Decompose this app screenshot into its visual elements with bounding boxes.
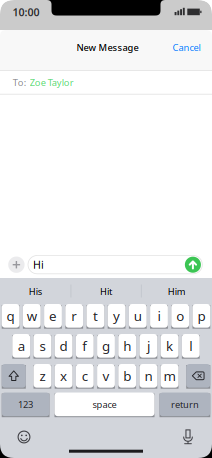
button[interactable]: c [76,364,94,388]
button[interactable]: d [55,334,72,358]
button[interactable]: j [139,334,157,358]
button[interactable] [8,256,25,273]
staticText: u [134,307,142,325]
button[interactable]: r [65,304,83,328]
staticText: a [18,337,25,355]
staticText: l [189,337,192,355]
button[interactable]: z [33,364,51,388]
button[interactable]: l [182,334,200,358]
staticText: t [93,307,98,325]
staticText: Zoe Taylor [30,76,74,89]
button[interactable]: Hit [76,282,136,300]
button[interactable]: q [2,304,19,328]
button[interactable]: return [159,392,210,416]
staticText: 10:00 [12,5,39,19]
button[interactable]: n [139,364,157,388]
button[interactable] [185,257,201,273]
button[interactable]: x [55,364,72,388]
staticText: To: [13,76,27,89]
button[interactable]: Him [147,282,207,300]
staticText: y [113,307,120,325]
staticText: Cancel [172,41,200,54]
staticText: Him [168,285,186,297]
staticText: j [147,337,150,355]
button[interactable]: k [161,334,178,358]
staticText: r [71,307,77,325]
button[interactable]: His [5,282,65,300]
staticText: space [92,398,116,411]
staticText: His [29,285,42,297]
button[interactable]: i [150,304,168,328]
staticText: 123 [18,398,33,411]
button[interactable]: 123 [2,392,49,416]
button[interactable]: space [54,392,154,416]
button[interactable] [186,364,210,388]
button[interactable]: p [192,304,210,328]
staticText: v [102,367,109,385]
button[interactable]: b [118,364,136,388]
staticText: e [49,307,57,325]
button[interactable]: o [171,304,189,328]
staticText: o [176,307,184,325]
staticText: d [60,337,68,355]
button[interactable]: h [118,334,136,358]
staticText: c [82,367,88,385]
staticText: i [157,307,160,325]
staticText: return [171,398,199,411]
button[interactable]: Hi [28,255,202,274]
staticText: Hi [33,257,44,272]
button[interactable]: v [97,364,115,388]
staticText: w [27,307,37,325]
button[interactable]: e [44,304,62,328]
staticText: q [7,307,15,325]
staticText: g [102,337,110,355]
staticText: b [123,367,131,385]
button[interactable]: m [161,364,178,388]
staticText: k [166,337,173,355]
button[interactable]: f [76,334,94,358]
button[interactable]: t [86,304,104,328]
button[interactable]: s [33,334,51,358]
staticText: h [123,337,131,355]
staticText: x [60,367,67,385]
staticText: Hit [100,285,112,297]
button[interactable]: w [23,304,41,328]
staticText: New Message [76,41,138,54]
staticText: p [197,307,205,325]
staticText: f [82,337,87,355]
staticText: z [39,367,45,385]
button[interactable] [2,364,26,388]
button[interactable] [180,429,196,445]
button[interactable]: Cancel [166,38,206,56]
button[interactable] [16,429,32,445]
button[interactable]: a [12,334,30,358]
staticText: s [39,337,45,355]
staticText: m [164,367,176,385]
staticText: n [144,367,152,385]
button[interactable]: g [97,334,115,358]
button[interactable]: y [108,304,125,328]
button[interactable]: u [129,304,147,328]
